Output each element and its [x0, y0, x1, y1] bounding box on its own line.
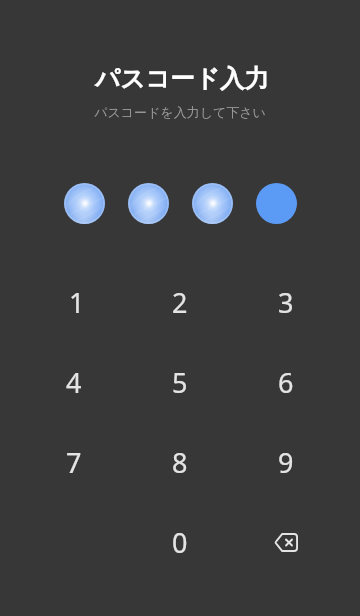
button[interactable]: 5 — [127, 342, 233, 422]
button[interactable]: 3 — [233, 262, 339, 342]
staticText: 3 — [278, 284, 294, 321]
staticText: 8 — [172, 444, 188, 481]
button[interactable]: 7 — [21, 422, 127, 502]
staticText: 5 — [172, 364, 188, 401]
staticText: 6 — [278, 364, 294, 401]
staticText: パスコードを入力して下さい — [0, 104, 360, 120]
button[interactable]: 8 — [127, 422, 233, 502]
staticText: 2 — [172, 284, 188, 321]
staticText: 1 — [69, 284, 85, 321]
button[interactable]: 9 — [233, 422, 339, 502]
staticText: 0 — [172, 524, 188, 561]
button[interactable]: 6 — [233, 342, 339, 422]
button[interactable]: 0 — [127, 502, 233, 582]
staticText: 7 — [66, 444, 82, 481]
button[interactable]: Delete — [233, 502, 339, 582]
staticText: パスコード入力 — [2, 63, 360, 94]
button[interactable]: 4 — [21, 342, 127, 422]
staticText: 4 — [66, 364, 82, 401]
staticText: 9 — [278, 444, 294, 481]
button[interactable]: 2 — [127, 262, 233, 342]
button[interactable]: 1 — [21, 262, 127, 342]
